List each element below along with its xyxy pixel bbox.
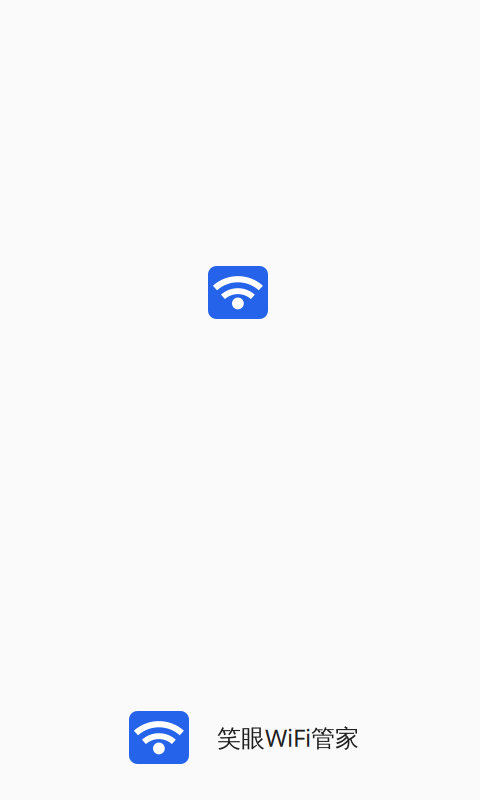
staticText: 笑眼WiFi管家 xyxy=(217,722,359,753)
